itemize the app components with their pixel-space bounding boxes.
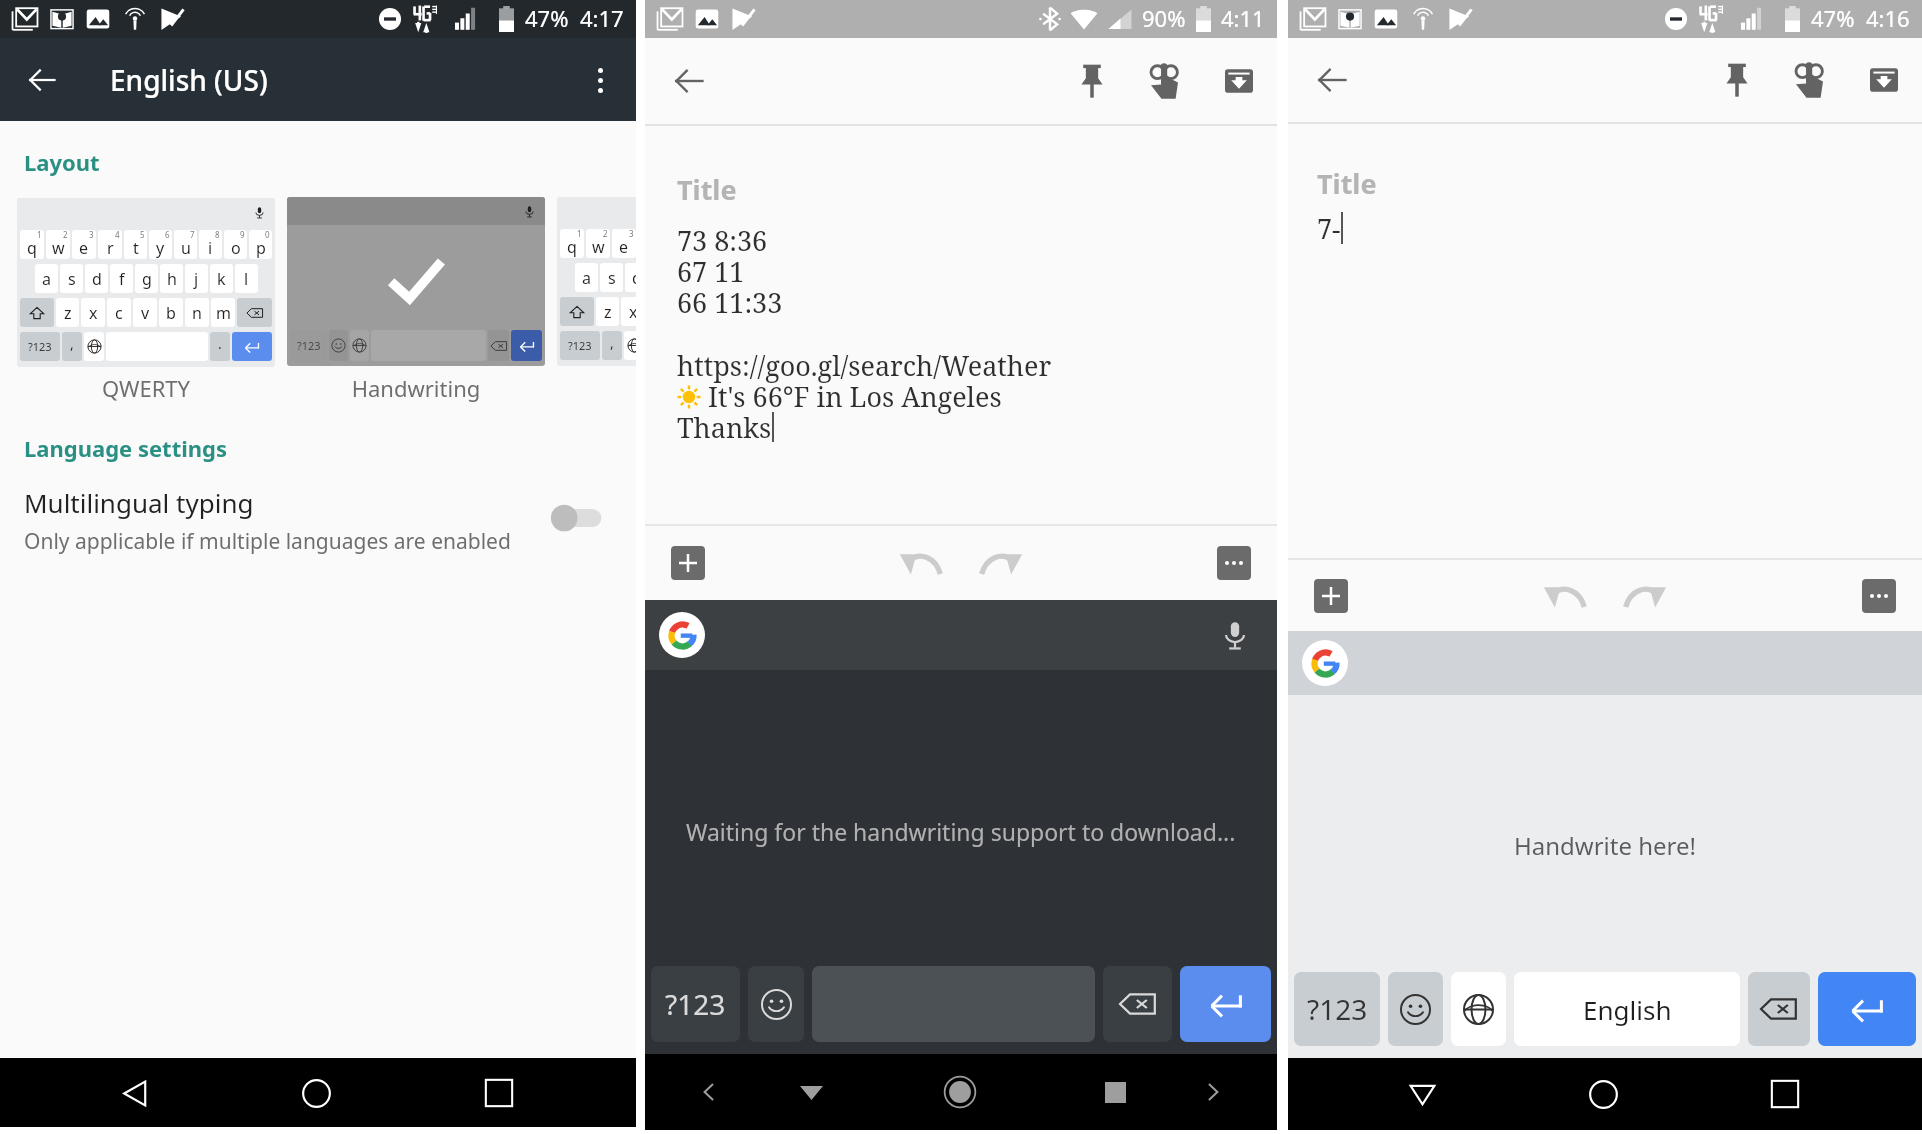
staticText: z xyxy=(64,302,72,324)
staticText: 4 xyxy=(115,230,120,240)
staticText: , xyxy=(610,333,614,352)
staticText: a xyxy=(42,268,51,290)
button[interactable]: Previous xyxy=(683,1066,735,1118)
button[interactable]: Undo xyxy=(1542,573,1588,619)
staticText: 1 xyxy=(37,230,42,240)
staticText: Multilingual typing xyxy=(24,485,254,520)
staticText: 7- xyxy=(1317,210,1341,247)
button[interactable]: Add xyxy=(1310,575,1352,617)
button[interactable]: Back xyxy=(16,54,68,106)
staticText: w xyxy=(592,236,605,258)
button[interactable] xyxy=(1451,972,1506,1046)
staticText: l xyxy=(244,268,249,290)
button[interactable]: Redo xyxy=(1622,573,1668,619)
staticText: Only applicable if multiple languages ar… xyxy=(24,527,511,556)
staticText: 2 xyxy=(603,229,608,239)
button[interactable]: Recents xyxy=(1089,1066,1141,1118)
button[interactable]: Reminder xyxy=(1129,52,1203,110)
staticText: 2 xyxy=(63,230,68,240)
staticText: 3 xyxy=(629,229,634,239)
button[interactable]: Hide keyboard xyxy=(1393,1065,1451,1123)
staticText: Language settings xyxy=(24,433,228,463)
staticText: n xyxy=(192,302,202,324)
button[interactable]: Add xyxy=(667,542,709,584)
button[interactable]: Next xyxy=(1187,1066,1239,1118)
button[interactable]: Pin xyxy=(1700,51,1774,109)
staticText: b xyxy=(166,302,176,324)
staticText: h xyxy=(167,268,177,290)
button[interactable]: More xyxy=(1858,575,1900,617)
button[interactable]: Voice input xyxy=(1215,615,1255,655)
staticText: c xyxy=(115,302,123,324)
staticText: p xyxy=(256,237,266,259)
staticText: https://goo.gl/search/Weather xyxy=(677,347,1052,384)
button[interactable]: Home xyxy=(287,1064,345,1122)
staticText: English (US) xyxy=(110,61,268,99)
button[interactable] xyxy=(748,966,804,1042)
button[interactable]: More xyxy=(1213,542,1255,584)
staticText: q xyxy=(567,236,577,258)
button[interactable]: Back xyxy=(663,55,715,107)
staticText: o xyxy=(231,237,241,259)
staticText: Handwriting xyxy=(287,373,545,403)
staticText: d xyxy=(632,267,636,289)
button[interactable]: Home xyxy=(934,1066,986,1118)
button[interactable] xyxy=(1748,972,1810,1046)
staticText: g xyxy=(142,268,152,290)
button[interactable]: Recents xyxy=(470,1064,528,1122)
button[interactable]: Multilingual typing xyxy=(0,478,636,574)
button[interactable]: Back xyxy=(1306,54,1358,106)
staticText: s xyxy=(68,268,76,290)
button[interactable]: More options xyxy=(574,54,626,106)
button[interactable]: Archive xyxy=(1848,51,1920,109)
staticText: 4:11 xyxy=(1221,3,1265,33)
staticText: ?123 xyxy=(665,985,726,1023)
staticText: 6 xyxy=(165,230,170,240)
staticText: Title xyxy=(1317,165,1377,202)
button[interactable]: Undo xyxy=(898,540,944,586)
staticText: English xyxy=(1583,992,1672,1027)
staticText: 47% xyxy=(525,3,569,33)
staticText: 9 xyxy=(240,230,245,240)
staticText: v xyxy=(141,302,150,324)
button[interactable]: Recents xyxy=(1756,1065,1814,1123)
staticText: i xyxy=(208,237,213,259)
button[interactable]: ?123 xyxy=(1294,972,1380,1046)
staticText: , xyxy=(70,334,74,353)
staticText: u xyxy=(181,237,191,259)
staticText: QWERTY xyxy=(17,373,275,403)
staticText: z xyxy=(604,301,612,323)
staticText: . xyxy=(218,334,222,353)
staticText: x xyxy=(89,302,98,324)
button[interactable]: ?123 xyxy=(287,197,545,366)
button[interactable]: Enter xyxy=(1180,966,1271,1042)
staticText: 1 xyxy=(577,229,582,239)
staticText: Title xyxy=(677,171,737,208)
button[interactable]: Back xyxy=(106,1064,164,1122)
staticText: d xyxy=(92,268,102,290)
staticText: 5 xyxy=(140,230,145,240)
button[interactable]: Archive xyxy=(1203,52,1275,110)
button[interactable]: Pin xyxy=(1055,52,1129,110)
staticText: It's 66°F in Los Angeles xyxy=(708,378,1002,415)
button[interactable]: English xyxy=(1514,972,1740,1046)
button[interactable]: Enter xyxy=(1818,972,1916,1046)
staticText: x xyxy=(629,301,636,323)
staticText: t xyxy=(133,237,139,259)
button[interactable]: Hide keyboard xyxy=(785,1066,837,1118)
button[interactable]: Google xyxy=(659,612,705,658)
button[interactable]: ?123 xyxy=(651,966,740,1042)
staticText: Waiting for the handwriting support to d… xyxy=(686,816,1236,847)
button[interactable] xyxy=(1388,972,1443,1046)
staticText: w xyxy=(52,237,65,259)
button[interactable]: 1 xyxy=(17,198,275,367)
staticText: 7 xyxy=(190,230,195,240)
button[interactable]: Home xyxy=(1574,1065,1632,1123)
staticText: 67 11 xyxy=(677,253,745,290)
staticText: e xyxy=(79,237,89,259)
button[interactable]: Reminder xyxy=(1774,51,1848,109)
button[interactable] xyxy=(1103,966,1172,1042)
button[interactable]: Google xyxy=(1302,640,1348,686)
button[interactable]: Redo xyxy=(978,540,1024,586)
